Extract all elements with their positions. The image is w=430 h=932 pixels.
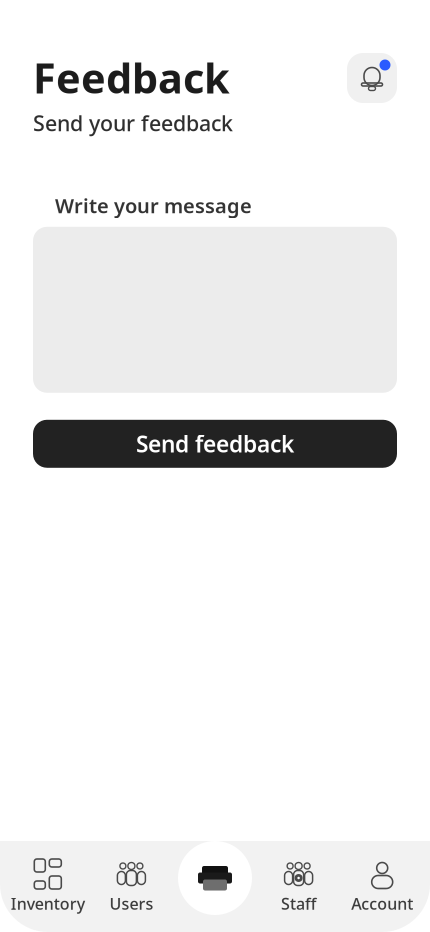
button[interactable]: Account xyxy=(340,855,424,920)
staticText: Staff xyxy=(281,893,316,914)
button[interactable]: Users xyxy=(90,855,173,920)
button[interactable]: Send feedback xyxy=(33,420,397,468)
button[interactable]: Inventory xyxy=(6,855,90,920)
staticText: Inventory xyxy=(11,893,85,914)
button[interactable]: Notifications xyxy=(344,50,400,106)
button[interactable]: Staff xyxy=(257,855,340,920)
staticText: Send your feedback xyxy=(33,109,233,137)
staticText: Write your message xyxy=(55,192,252,219)
staticText: Feedback xyxy=(33,50,230,105)
staticText: Send feedback xyxy=(136,429,294,459)
button[interactable]: Home xyxy=(178,841,252,915)
staticText: Users xyxy=(109,893,153,914)
staticText: Account xyxy=(351,893,413,914)
